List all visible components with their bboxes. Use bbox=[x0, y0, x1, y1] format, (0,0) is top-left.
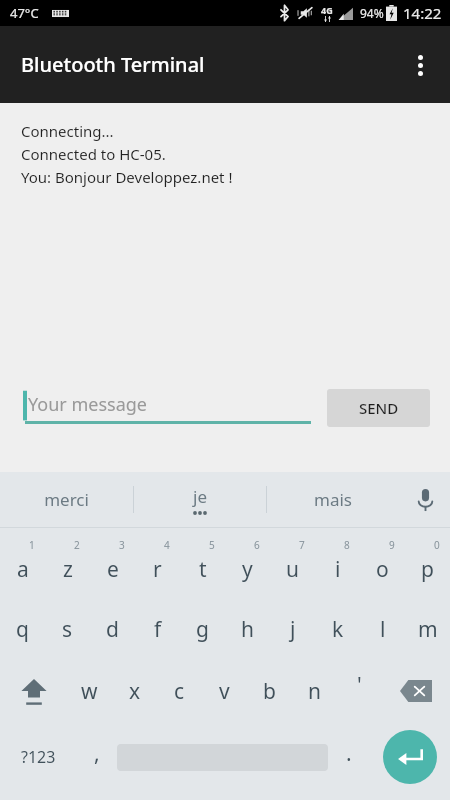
staticText: 14:22 bbox=[403, 3, 442, 23]
button[interactable]: 7 bbox=[270, 532, 315, 598]
staticText: e bbox=[107, 555, 119, 584]
button[interactable]: 0 bbox=[405, 532, 450, 598]
staticText: z bbox=[63, 555, 73, 584]
staticText: You: Bonjour Developpez.net ! bbox=[21, 167, 233, 187]
staticText: 2 bbox=[74, 538, 80, 552]
button[interactable]: Space bbox=[117, 722, 328, 792]
button[interactable]: s bbox=[45, 598, 90, 660]
button[interactable]: More options bbox=[398, 43, 442, 87]
button[interactable]: l bbox=[360, 598, 405, 660]
button[interactable]: f bbox=[135, 598, 180, 660]
staticText: y bbox=[242, 555, 253, 584]
button[interactable]: v bbox=[202, 660, 247, 722]
staticText: mais bbox=[314, 488, 352, 511]
staticText: 4G bbox=[321, 4, 333, 16]
button[interactable]: j bbox=[270, 598, 315, 660]
staticText: 1 bbox=[29, 538, 35, 552]
button[interactable]: 6 bbox=[225, 532, 270, 598]
staticText: r bbox=[153, 555, 162, 584]
staticText: j bbox=[290, 615, 296, 644]
staticText: c bbox=[174, 677, 185, 706]
button[interactable]: 2 bbox=[45, 532, 90, 598]
staticText: h bbox=[241, 615, 254, 644]
button[interactable]: w bbox=[67, 660, 112, 722]
staticText: 7 bbox=[299, 538, 305, 552]
staticText: ?123 bbox=[21, 746, 56, 768]
staticText: je bbox=[193, 485, 207, 508]
staticText: d bbox=[106, 615, 119, 644]
staticText: 6 bbox=[254, 538, 260, 552]
button[interactable]: 1 bbox=[0, 532, 45, 598]
button[interactable]: d bbox=[90, 598, 135, 660]
button[interactable]: b bbox=[247, 660, 292, 722]
staticText: Bluetooth Terminal bbox=[21, 51, 205, 78]
staticText: t bbox=[199, 555, 207, 584]
staticText: x bbox=[129, 677, 141, 706]
staticText: 8 bbox=[344, 538, 350, 552]
staticText: v bbox=[219, 677, 230, 706]
button[interactable]: ' bbox=[337, 660, 382, 722]
staticText: 47°C bbox=[10, 4, 39, 22]
button[interactable]: 4 bbox=[135, 532, 180, 598]
staticText: , bbox=[94, 739, 100, 768]
button[interactable]: Voice input bbox=[400, 472, 450, 527]
staticText: 5 bbox=[209, 538, 215, 552]
staticText: g bbox=[196, 615, 209, 644]
button[interactable]: . bbox=[328, 722, 369, 792]
staticText: n bbox=[308, 677, 321, 706]
button[interactable]: SEND bbox=[327, 389, 430, 427]
staticText: q bbox=[16, 615, 29, 644]
staticText: 3 bbox=[119, 538, 125, 552]
button[interactable]: h bbox=[225, 598, 270, 660]
staticText: 4 bbox=[164, 538, 170, 552]
staticText: o bbox=[376, 555, 389, 584]
button[interactable]: g bbox=[180, 598, 225, 660]
button[interactable]: Shift bbox=[0, 660, 67, 722]
staticText: w bbox=[81, 677, 98, 706]
button[interactable]: ?123 bbox=[0, 722, 76, 792]
staticText: f bbox=[154, 615, 162, 644]
staticText: SEND bbox=[359, 398, 399, 418]
staticText: p bbox=[421, 555, 434, 584]
staticText: a bbox=[17, 555, 29, 584]
button[interactable]: 8 bbox=[315, 532, 360, 598]
button[interactable]: m bbox=[405, 598, 450, 660]
button[interactable]: je bbox=[133, 472, 266, 527]
staticText: merci bbox=[44, 488, 89, 511]
button[interactable]: merci bbox=[0, 472, 133, 527]
button[interactable]: x bbox=[112, 660, 157, 722]
button[interactable]: Your message bbox=[21, 384, 311, 432]
staticText: s bbox=[62, 615, 73, 644]
button[interactable]: 9 bbox=[360, 532, 405, 598]
button[interactable]: q bbox=[0, 598, 45, 660]
button[interactable]: n bbox=[292, 660, 337, 722]
button[interactable]: mais bbox=[266, 472, 399, 527]
staticText: Your message bbox=[28, 392, 147, 417]
staticText: 9 bbox=[389, 538, 395, 552]
button[interactable]: 3 bbox=[90, 532, 135, 598]
staticText: l bbox=[380, 615, 386, 644]
staticText: b bbox=[263, 677, 276, 706]
staticText: . bbox=[346, 739, 352, 768]
staticText: 94% bbox=[360, 5, 384, 21]
staticText: k bbox=[332, 615, 344, 644]
staticText: Connecting... bbox=[21, 121, 114, 141]
staticText: u bbox=[286, 555, 299, 584]
button[interactable]: Backspace bbox=[382, 660, 450, 722]
button[interactable]: , bbox=[76, 722, 117, 792]
staticText: Connected to HC-05. bbox=[21, 144, 166, 164]
button[interactable]: 5 bbox=[180, 532, 225, 598]
button[interactable]: Enter bbox=[369, 722, 450, 792]
staticText: m bbox=[418, 615, 438, 644]
button[interactable]: k bbox=[315, 598, 360, 660]
staticText: 0 bbox=[434, 538, 440, 552]
staticText: ' bbox=[357, 671, 362, 700]
button[interactable]: c bbox=[157, 660, 202, 722]
staticText: i bbox=[335, 555, 341, 584]
